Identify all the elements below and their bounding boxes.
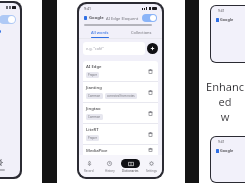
- staticText: Common: [88, 115, 101, 119]
- button[interactable]: MediaPipe: [83, 145, 158, 155]
- staticText: Proper: [88, 136, 97, 140]
- button[interactable]: Delete LiteRT: [146, 130, 155, 139]
- staticText: AI Edge Eloquent: [106, 16, 139, 21]
- staticText: Google: [220, 148, 234, 153]
- button[interactable]: Settings: [141, 157, 162, 175]
- button[interactable]: Delete Jingtao: [146, 109, 155, 118]
- button[interactable]: Toggle: [0, 13, 20, 26]
- button[interactable]: Jingtao: [83, 103, 158, 123]
- button[interactable]: Jianting: [83, 82, 158, 102]
- staticText: History: [105, 169, 115, 173]
- button[interactable]: Delete AI Edge: [146, 67, 155, 76]
- staticText: e.g. "café": [86, 46, 104, 51]
- button[interactable]: Record: [79, 157, 99, 175]
- button[interactable]: Dictionaries: [120, 157, 141, 175]
- button[interactable]: Delete Jianting: [146, 88, 155, 97]
- staticText: 9:41: [84, 6, 91, 11]
- staticText: Common: [88, 94, 101, 98]
- button[interactable]: Delete MediaPipe: [146, 148, 155, 152]
- button[interactable]: AI Edge: [83, 61, 158, 81]
- button[interactable]: All words: [79, 30, 120, 38]
- staticText: 9:41: [218, 140, 225, 144]
- button[interactable]: e.g. "café": [83, 42, 145, 55]
- staticText: Enhanced w: [205, 79, 245, 124]
- staticText: Google: [89, 15, 104, 21]
- staticText: 9:41: [218, 9, 225, 13]
- staticText: Proper: [88, 73, 97, 77]
- staticText: Settings: [146, 169, 157, 173]
- staticText: Jianting: [86, 85, 102, 91]
- staticText: LiteRT: [86, 127, 99, 133]
- button[interactable]: LiteRT: [83, 124, 158, 144]
- staticText: MediaPipe: [86, 148, 108, 152]
- staticText: Dictionaries: [122, 169, 139, 173]
- staticText: Record: [84, 169, 94, 173]
- staticText: Collections: [131, 30, 152, 35]
- staticText: corrected from notes: [107, 94, 135, 98]
- staticText: Jingtao: [86, 106, 101, 112]
- staticText: All words: [91, 30, 109, 35]
- button[interactable]: Settings: [0, 158, 20, 177]
- staticText: Google: [220, 17, 234, 22]
- button[interactable]: Collections: [120, 30, 162, 38]
- button[interactable]: Enable: [142, 14, 157, 22]
- other: Toggle: [0, 15, 16, 24]
- button[interactable]: Add word: [147, 43, 158, 54]
- button[interactable]: History: [99, 157, 120, 175]
- staticText: AI Edge: [86, 64, 102, 70]
